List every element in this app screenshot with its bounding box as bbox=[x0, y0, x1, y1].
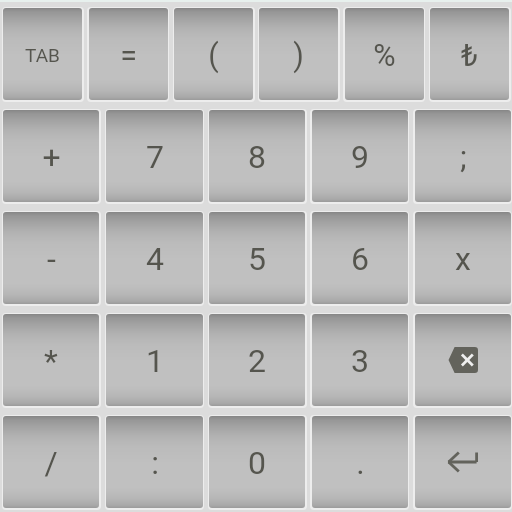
staticText: 9 bbox=[351, 138, 369, 176]
staticText: x bbox=[455, 240, 471, 278]
staticText: 5 bbox=[248, 240, 266, 278]
staticText: 8 bbox=[248, 138, 266, 176]
staticText: - bbox=[47, 240, 56, 278]
button[interactable]: 4 bbox=[106, 212, 203, 304]
staticText: 2 bbox=[248, 342, 266, 380]
staticText: / bbox=[44, 444, 58, 482]
button[interactable]: ) bbox=[259, 8, 338, 100]
staticText: ) bbox=[293, 38, 304, 74]
button[interactable]: 1 bbox=[106, 314, 203, 406]
button[interactable]: 2 bbox=[209, 314, 305, 406]
button[interactable]: : bbox=[106, 416, 203, 508]
staticText: TAB bbox=[25, 44, 60, 66]
staticText: % bbox=[373, 38, 396, 74]
button[interactable]: ₺ bbox=[430, 8, 509, 100]
button[interactable]: + bbox=[3, 110, 99, 202]
button[interactable]: 6 bbox=[312, 212, 408, 304]
button[interactable]: Backspace bbox=[415, 314, 511, 406]
button[interactable]: ( bbox=[174, 8, 253, 100]
staticText: 7 bbox=[146, 138, 164, 176]
button[interactable]: 0 bbox=[209, 416, 305, 508]
button[interactable]: TAB bbox=[3, 8, 82, 100]
button[interactable]: Enter bbox=[415, 416, 511, 508]
button[interactable]: 9 bbox=[312, 110, 408, 202]
button[interactable]: . bbox=[312, 416, 408, 508]
staticText: * bbox=[44, 342, 58, 380]
button[interactable]: - bbox=[3, 212, 99, 304]
staticText: : bbox=[151, 444, 159, 482]
staticText: 6 bbox=[351, 240, 369, 278]
staticText: . bbox=[356, 444, 365, 482]
button[interactable]: / bbox=[3, 416, 99, 508]
button[interactable]: = bbox=[89, 8, 168, 100]
button[interactable]: * bbox=[3, 314, 99, 406]
staticText: 0 bbox=[248, 444, 266, 482]
staticText: ( bbox=[208, 38, 219, 74]
staticText: ₺ bbox=[461, 38, 478, 74]
button[interactable]: 5 bbox=[209, 212, 305, 304]
button[interactable]: 3 bbox=[312, 314, 408, 406]
staticText: ; bbox=[460, 138, 467, 176]
staticText: 4 bbox=[146, 240, 164, 278]
staticText: 3 bbox=[351, 342, 369, 380]
button[interactable]: 7 bbox=[106, 110, 203, 202]
button[interactable]: 8 bbox=[209, 110, 305, 202]
staticText: + bbox=[42, 138, 61, 176]
button[interactable]: % bbox=[345, 8, 424, 100]
button[interactable]: ; bbox=[415, 110, 511, 202]
staticText: 1 bbox=[146, 342, 164, 380]
staticText: = bbox=[120, 38, 137, 74]
button[interactable]: x bbox=[415, 212, 511, 304]
